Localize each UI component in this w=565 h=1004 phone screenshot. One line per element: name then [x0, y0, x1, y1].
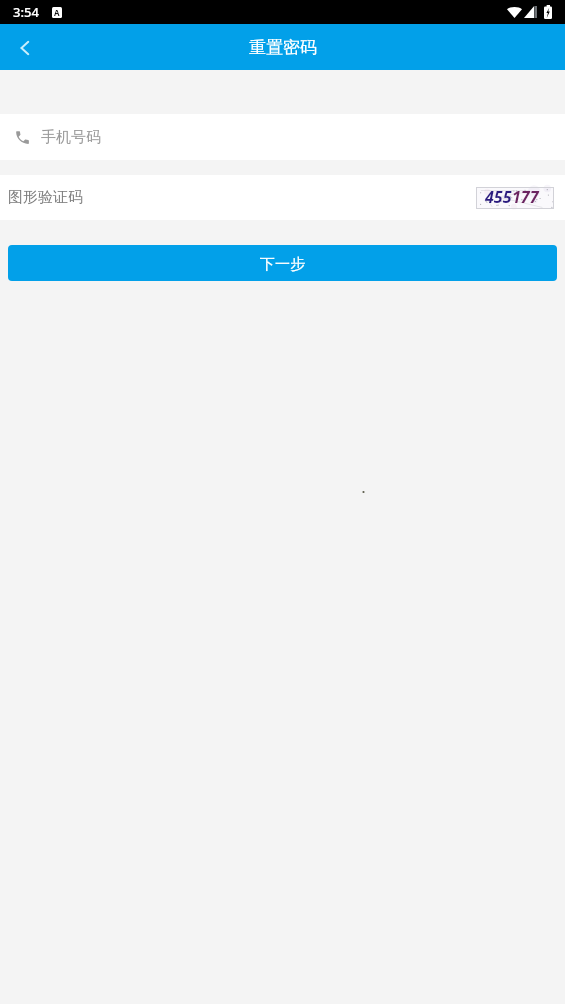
staticText: 455 — [485, 186, 512, 208]
staticText: 下一步 — [260, 255, 305, 274]
staticText: 177 — [512, 186, 539, 208]
button[interactable]: 图形验证码 — [0, 175, 565, 220]
button[interactable]: Back — [1, 25, 47, 71]
staticText: 图形验证码 — [8, 188, 83, 207]
staticText: 重置密码 — [249, 37, 317, 58]
staticText: A — [54, 7, 60, 18]
button[interactable]: 下一步 — [8, 245, 557, 281]
staticText: 手机号码 — [41, 128, 101, 147]
button[interactable]: 手机号码 — [0, 114, 565, 160]
button[interactable]: Refresh captcha — [476, 187, 554, 209]
staticText: 3:54 — [13, 3, 39, 21]
